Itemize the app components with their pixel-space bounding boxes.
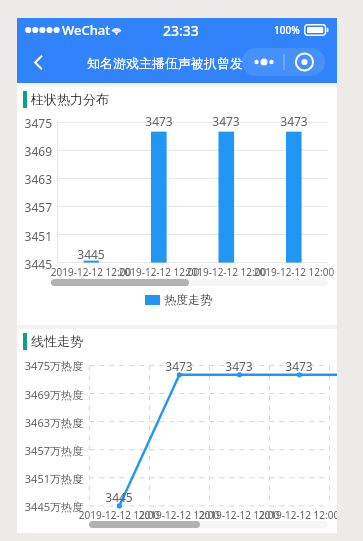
- staticText: 线性走势: [31, 333, 83, 349]
- staticText: 2019-12-12 12:00: [116, 265, 202, 279]
- staticText: 3469万热度: [24, 387, 83, 402]
- staticText: 3445: [17, 256, 52, 272]
- staticText: 3445: [73, 246, 109, 262]
- staticText: 3473: [221, 358, 257, 374]
- staticText: 3457万热度: [24, 443, 83, 458]
- staticText: 23:33: [163, 21, 199, 40]
- staticText: 3473: [208, 113, 244, 129]
- staticText: 3451万热度: [24, 471, 83, 486]
- staticText: 3463: [17, 171, 52, 187]
- staticText: 3457: [17, 199, 52, 215]
- staticText: 3473: [281, 358, 317, 374]
- staticText: 2019-12-12 12:00: [183, 265, 269, 279]
- staticText: 2019-12-12 12:00: [136, 508, 222, 522]
- button[interactable]: Back: [17, 42, 59, 83]
- staticText: 2019-12-12 12:00: [251, 265, 337, 279]
- staticText: 柱状热力分布: [31, 91, 109, 107]
- staticText: 3473: [276, 113, 312, 129]
- staticText: 知名游戏主播伍声被扒曾发: [87, 55, 243, 71]
- staticText: 3475万热度: [24, 358, 83, 373]
- staticText: 2019-12-12 12:00: [196, 508, 282, 522]
- button[interactable]: More options: [242, 48, 325, 76]
- staticText: 热度走势: [164, 292, 212, 307]
- staticText: 2019-12-12 12:00: [256, 508, 337, 522]
- staticText: WeChat: [62, 21, 111, 39]
- staticText: 3445万热度: [24, 499, 83, 514]
- staticText: 3463万热度: [24, 415, 83, 430]
- staticText: 3475: [17, 115, 52, 131]
- staticText: 2019-12-12 12:00: [76, 508, 162, 522]
- staticText: 2019-12-12 12:00: [48, 265, 134, 279]
- staticText: 3451: [17, 228, 52, 244]
- staticText: 3469: [17, 143, 52, 159]
- staticText: 100%: [274, 23, 300, 37]
- staticText: 3473: [161, 358, 197, 374]
- staticText: 3473: [141, 113, 177, 129]
- staticText: 3445: [101, 489, 137, 505]
